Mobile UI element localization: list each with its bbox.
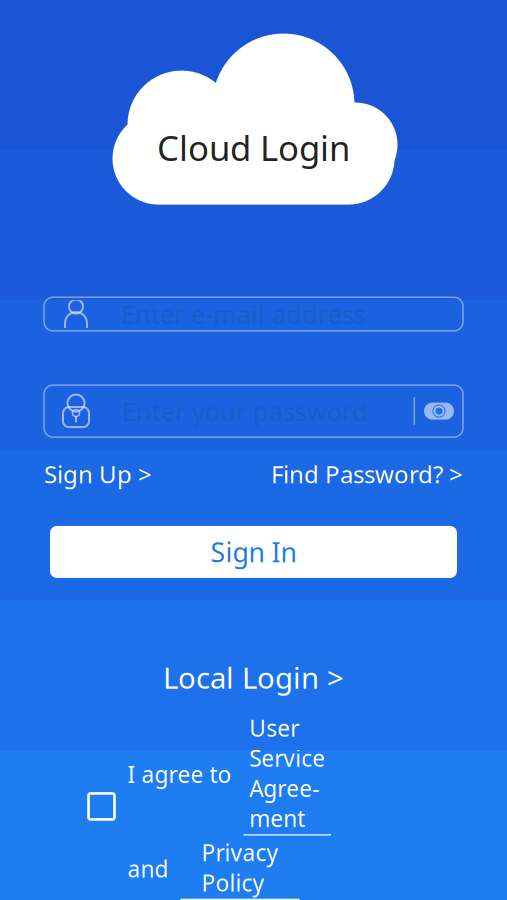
button[interactable]: Find Password? > bbox=[271, 452, 463, 496]
staticText: Cloud Login bbox=[157, 125, 350, 171]
button[interactable]: Local Login > bbox=[143, 650, 364, 705]
staticText: I agree to bbox=[127, 759, 243, 789]
staticText: Enter e-mail address bbox=[121, 297, 366, 331]
staticText: Sign In bbox=[210, 534, 296, 570]
button[interactable]: User Service Agreement bbox=[243, 713, 331, 835]
button[interactable]: Show password bbox=[415, 385, 463, 437]
staticText: and bbox=[127, 854, 180, 884]
staticText: User Service Agreement bbox=[249, 713, 325, 833]
staticText: Local Login > bbox=[163, 658, 344, 697]
button[interactable]: Sign In bbox=[50, 526, 457, 578]
button[interactable]: Sign Up > bbox=[44, 452, 152, 496]
staticText: Sign Up > bbox=[44, 458, 152, 490]
button[interactable]: Agree to terms bbox=[88, 793, 114, 819]
staticText: Enter your password bbox=[122, 394, 368, 428]
button[interactable]: Privacy Policy bbox=[180, 837, 299, 900]
staticText: Privacy Policy bbox=[201, 837, 278, 898]
staticText: Find Password? > bbox=[271, 458, 463, 490]
